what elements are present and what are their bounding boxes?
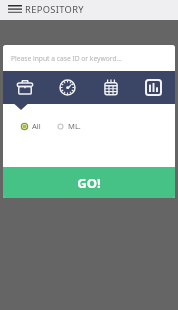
button[interactable]: ML. [57,116,81,136]
button[interactable]: GO! [3,167,175,198]
button[interactable]: Cases [3,71,46,104]
staticText: All [32,121,41,131]
staticText: REPOSITORY [25,3,84,16]
button[interactable]: Recent [46,71,89,104]
button[interactable]: All [21,116,41,136]
staticText: Please input a case ID or keyword... [11,54,122,63]
button[interactable]: Please input a case ID or keyword... [3,45,175,71]
staticText: GO! [77,174,101,192]
button[interactable]: Open navigation menu [0,0,25,20]
button[interactable]: Calendar [89,71,132,104]
button[interactable]: Statistics [132,71,175,104]
staticText: ML. [68,121,81,131]
